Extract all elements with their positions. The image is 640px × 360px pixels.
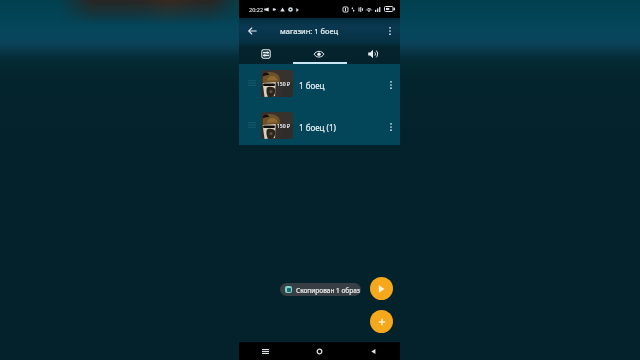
button[interactable]: Item menu — [383, 75, 399, 91]
staticText: 1 боец — [299, 80, 325, 91]
staticText: Скопирован 1 образ — [296, 286, 360, 295]
button[interactable]: Play — [370, 277, 393, 300]
staticText: магазин: 1 боец — [280, 26, 339, 36]
button[interactable]: 150 ₽ — [239, 111, 400, 139]
button[interactable]: Back — [346, 342, 400, 360]
staticText: 150 ₽ — [277, 123, 290, 130]
button[interactable]: Home — [292, 342, 346, 360]
button[interactable]: Recent apps — [239, 342, 292, 360]
button[interactable]: Layers — [239, 44, 292, 64]
button[interactable]: More options — [382, 23, 398, 39]
button[interactable]: Скопирован 1 образ — [280, 283, 361, 296]
staticText: 20:22 — [249, 6, 264, 13]
button[interactable]: Sound — [346, 44, 400, 64]
button[interactable]: Item menu — [383, 117, 399, 133]
button[interactable]: Back — [243, 22, 261, 40]
staticText: 1 боец (1) — [299, 122, 336, 133]
staticText: 150 ₽ — [277, 81, 290, 88]
button[interactable]: Preview — [292, 44, 346, 64]
button[interactable]: 150 ₽ — [239, 69, 400, 97]
button[interactable]: Add — [370, 310, 393, 333]
